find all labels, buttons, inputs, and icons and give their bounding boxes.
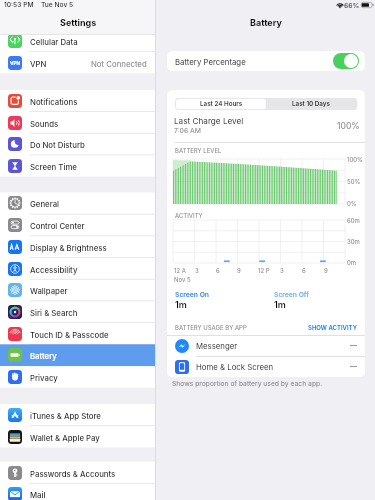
staticText: 66% <box>344 1 360 9</box>
staticText: Screen On <box>175 290 209 298</box>
staticText: 1m <box>175 299 187 310</box>
staticText: Not Connected <box>91 59 147 68</box>
staticText: Sounds <box>30 119 59 128</box>
staticText: Control Center <box>30 221 85 230</box>
button[interactable]: Battery Percentage <box>167 51 365 71</box>
staticText: General <box>30 199 60 208</box>
staticText: 12 A <box>174 267 186 274</box>
button[interactable]: VPN <box>0 52 156 74</box>
staticText: 9 <box>324 267 328 274</box>
staticText: SHOW ACTIVITY <box>308 324 357 331</box>
button[interactable]: Display & Brightness <box>0 236 156 258</box>
staticText: Battery <box>250 17 282 28</box>
button[interactable]: Screen Time <box>0 155 156 177</box>
staticText: 1m <box>274 299 286 310</box>
staticText: 3 <box>280 267 284 274</box>
button[interactable]: Do Not Disturb <box>0 133 156 155</box>
button[interactable]: SHOW ACTIVITY <box>308 324 357 331</box>
staticText: iTunes & App Store <box>30 411 101 420</box>
staticText: Last 24 Hours <box>200 100 243 108</box>
staticText: Shows proportion of battery used by each… <box>172 379 323 387</box>
button[interactable]: Wallpaper <box>0 279 156 301</box>
staticText: Battery Percentage <box>175 57 246 66</box>
button[interactable]: Last 10 Days <box>266 99 356 109</box>
staticText: Messenger <box>196 341 238 350</box>
staticText: 100% <box>347 156 363 163</box>
staticText: Wallet & Apple Pay <box>30 433 100 442</box>
staticText: 6 <box>302 267 306 274</box>
button[interactable]: Mail <box>0 483 156 500</box>
staticText: 0% <box>347 200 357 207</box>
button[interactable]: Battery Percentage toggle <box>333 53 359 69</box>
staticText: Notifications <box>30 97 78 106</box>
staticText: 30m <box>347 238 360 245</box>
staticText: 50% <box>347 178 361 185</box>
staticText: 10:53 PM <box>4 1 34 9</box>
staticText: Passwords & Accounts <box>30 469 116 478</box>
staticText: Tue Nov 5 <box>41 1 74 9</box>
button[interactable]: Sounds <box>0 112 156 134</box>
staticText: 100% <box>337 121 360 131</box>
staticText: Mail <box>30 490 46 499</box>
button[interactable]: Touch ID & Passcode <box>0 323 156 345</box>
button[interactable]: Home & Lock Screen <box>175 356 357 377</box>
staticText: Last 10 Days <box>292 100 330 108</box>
button[interactable]: Privacy <box>0 366 156 388</box>
button[interactable]: Accessibility <box>0 258 156 280</box>
staticText: Battery <box>30 351 57 360</box>
staticText: BATTERY LEVEL <box>175 147 222 154</box>
staticText: Accessibility <box>30 265 78 274</box>
staticText: Do Not Disturb <box>30 140 85 149</box>
button[interactable]: Control Center <box>0 214 156 236</box>
staticText: 12 P <box>258 267 270 274</box>
button[interactable]: Passwords & Accounts <box>0 462 156 484</box>
staticText: Touch ID & Passcode <box>30 330 109 339</box>
button[interactable]: Wallet & Apple Pay <box>0 426 156 448</box>
staticText: 0m <box>347 259 357 266</box>
staticText: Wallpaper <box>30 286 68 295</box>
staticText: Home & Lock Screen <box>196 362 274 371</box>
staticText: 9 <box>237 267 241 274</box>
button[interactable]: Screen On <box>175 290 209 310</box>
staticText: 6 <box>216 267 220 274</box>
button[interactable]: General <box>0 192 156 214</box>
button[interactable]: Last 24 Hours <box>176 99 266 109</box>
staticText: Nov 5 <box>174 276 191 283</box>
button[interactable]: Cellular Data <box>0 30 156 52</box>
staticText: Settings <box>60 17 97 28</box>
staticText: Last Charge Level <box>174 116 244 126</box>
button[interactable]: Screen Off <box>274 290 309 310</box>
button[interactable]: Battery <box>0 344 156 366</box>
button[interactable]: iTunes & App Store <box>0 404 156 426</box>
button[interactable]: Messenger <box>175 335 357 356</box>
staticText: Screen Time <box>30 162 77 171</box>
button[interactable]: Notifications <box>0 90 156 112</box>
staticText: 7:06 AM <box>174 126 202 134</box>
staticText: VPN <box>10 60 21 66</box>
staticText: VPN <box>30 59 47 68</box>
staticText: Privacy <box>30 373 58 382</box>
button[interactable]: Siri & Search <box>0 301 156 323</box>
staticText: Siri & Search <box>30 308 78 317</box>
staticText: Screen Off <box>274 290 309 298</box>
staticText: Display & Brightness <box>30 243 107 252</box>
staticText: ACTIVITY <box>175 212 203 219</box>
staticText: 60m <box>347 217 360 224</box>
staticText: BATTERY USAGE BY APP <box>175 324 247 331</box>
staticText: 3 <box>195 267 199 274</box>
staticText: Cellular Data <box>30 37 78 46</box>
